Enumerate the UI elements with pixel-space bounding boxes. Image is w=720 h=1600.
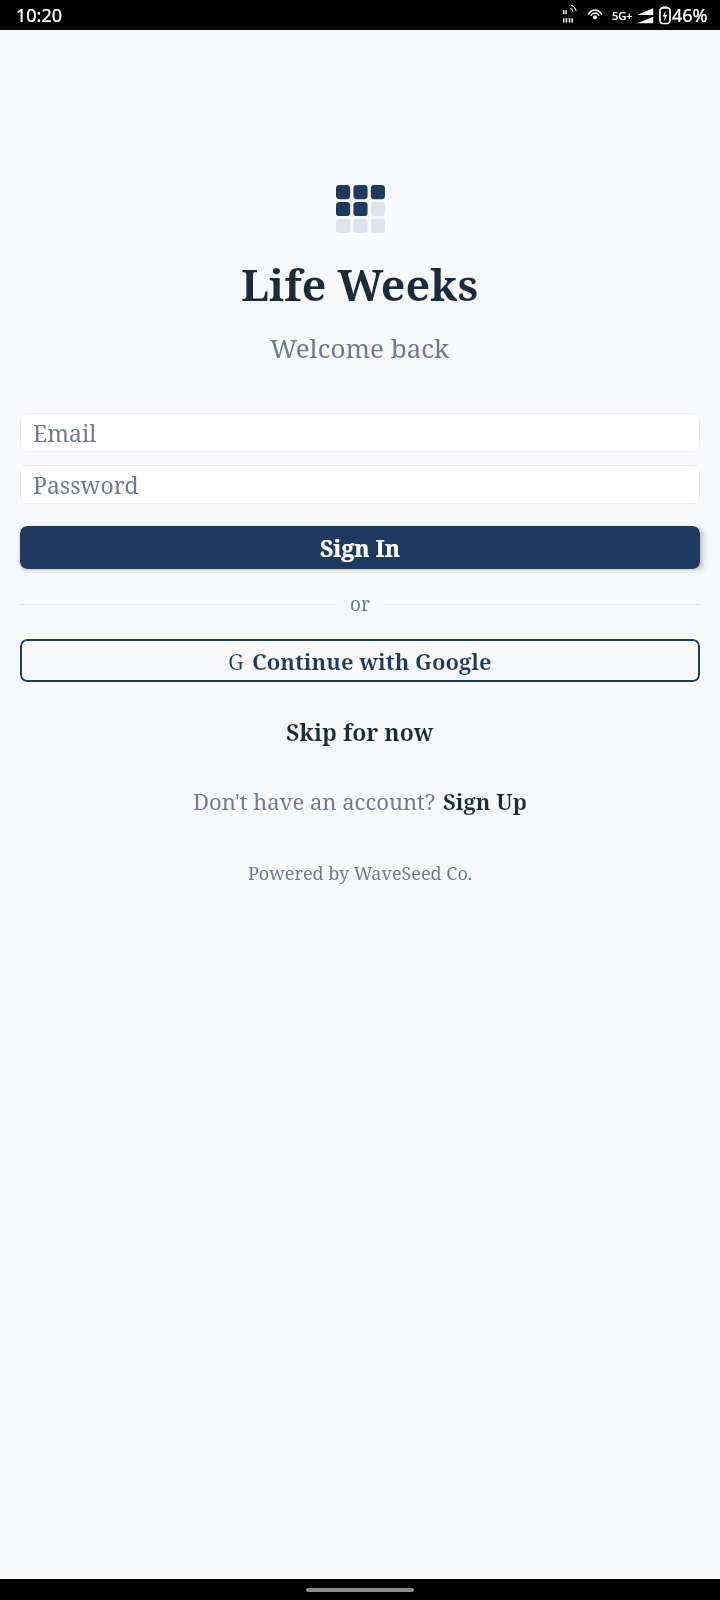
staticText: G bbox=[228, 646, 244, 676]
button[interactable]: Skip for now bbox=[270, 710, 450, 753]
staticText: Skip for now bbox=[286, 716, 434, 747]
staticText: 46% bbox=[672, 3, 708, 28]
staticText: Life Weeks bbox=[241, 255, 479, 314]
button[interactable]: Password bbox=[20, 465, 700, 504]
staticText: Password bbox=[33, 469, 139, 500]
staticText: or bbox=[350, 591, 370, 617]
button[interactable]: Sign In bbox=[20, 526, 700, 569]
staticText: Welcome back bbox=[270, 330, 450, 365]
staticText: 10:20 bbox=[16, 3, 63, 28]
staticText: Continue with Google bbox=[252, 646, 492, 676]
staticText: Email bbox=[33, 417, 97, 448]
staticText: Sign In bbox=[320, 532, 401, 563]
staticText: Powered by WaveSeed Co. bbox=[248, 861, 473, 886]
button[interactable]: Email bbox=[20, 413, 700, 452]
staticText: 5G+ bbox=[612, 8, 633, 23]
button[interactable]: Don't have an account? bbox=[181, 781, 539, 821]
button[interactable]: G bbox=[20, 639, 700, 682]
staticText: Sign Up bbox=[443, 786, 527, 816]
staticText: Don't have an account? bbox=[193, 786, 436, 816]
